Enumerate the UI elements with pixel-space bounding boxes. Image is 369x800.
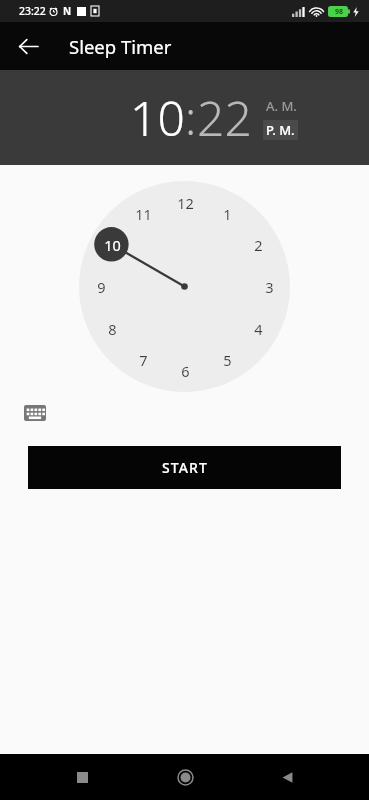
staticText: 3: [265, 277, 274, 297]
button[interactable]: 3: [254, 272, 284, 302]
button[interactable]: A. M.: [263, 96, 300, 116]
staticText: :: [185, 86, 197, 149]
staticText: 11: [135, 204, 152, 224]
staticText: 9: [97, 277, 106, 297]
button[interactable]: 4: [243, 314, 273, 344]
button[interactable]: P. M.: [263, 120, 298, 140]
staticText: 6: [181, 361, 190, 381]
staticText: 4: [254, 319, 263, 339]
staticText: 8: [108, 319, 117, 339]
staticText: 10: [130, 85, 185, 150]
button[interactable]: 10: [97, 230, 127, 260]
button[interactable]: 10: [130, 85, 185, 150]
button[interactable]: 5: [212, 345, 242, 375]
button[interactable]: Back: [8, 26, 48, 66]
button[interactable]: 9: [86, 272, 116, 302]
button[interactable]: Back: [266, 756, 308, 798]
button[interactable]: 6: [170, 356, 200, 386]
staticText: 5: [223, 350, 232, 370]
staticText: 1: [223, 204, 232, 224]
staticText: N: [63, 4, 72, 18]
button[interactable]: Recent apps: [61, 756, 103, 798]
staticText: Sleep Timer: [69, 34, 172, 59]
staticText: 10: [104, 235, 121, 255]
staticText: START: [162, 458, 208, 477]
staticText: A. M.: [266, 97, 297, 115]
staticText: 12: [177, 193, 194, 213]
button[interactable]: START: [28, 446, 341, 489]
button[interactable]: 22: [197, 85, 252, 150]
button[interactable]: Home: [164, 756, 206, 798]
button[interactable]: 11: [128, 199, 158, 229]
button[interactable]: 7: [128, 345, 158, 375]
staticText: P. M.: [266, 121, 295, 139]
button[interactable]: 1: [212, 199, 242, 229]
button[interactable]: 8: [97, 314, 127, 344]
staticText: 7: [139, 350, 148, 370]
staticText: 22: [197, 85, 252, 150]
button[interactable]: 12: [170, 188, 200, 218]
staticText: 23:22: [19, 4, 46, 18]
staticText: 2: [254, 235, 263, 255]
button[interactable]: 2: [243, 230, 273, 260]
staticText: 98: [335, 7, 344, 17]
button[interactable]: Switch to text input: [22, 403, 48, 423]
